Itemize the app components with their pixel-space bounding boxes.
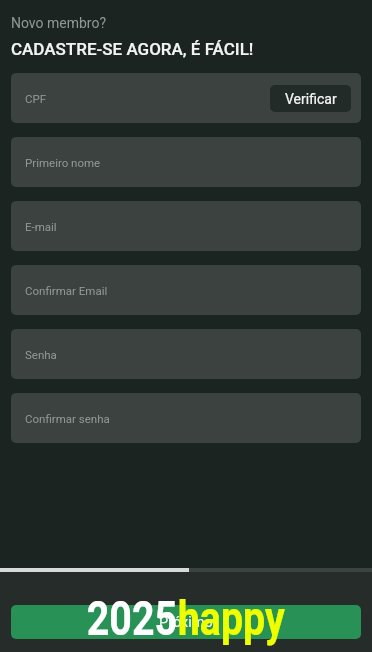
- staticText: Verificar: [285, 91, 337, 107]
- staticText: happy: [178, 590, 285, 646]
- button[interactable]: Próximo: [11, 605, 361, 639]
- staticText: 2025: [87, 590, 178, 646]
- staticText: Próximo: [159, 614, 213, 631]
- staticText: Novo membro?: [11, 15, 107, 31]
- button[interactable]: Primeiro nome: [11, 137, 361, 187]
- staticText: Primeiro nome: [25, 156, 101, 169]
- button[interactable]: Verificar: [270, 85, 351, 112]
- button[interactable]: E-mail: [11, 201, 361, 251]
- staticText: Confirmar senha: [25, 412, 110, 425]
- button[interactable]: Confirmar Email: [11, 265, 361, 315]
- button[interactable]: CPF: [11, 73, 361, 123]
- staticText: CADASTRE-SE AGORA, É FÁCIL!: [11, 39, 254, 59]
- staticText: Confirmar Email: [25, 284, 108, 297]
- staticText: Senha: [25, 348, 57, 361]
- staticText: CPF: [25, 92, 47, 105]
- staticText: E-mail: [25, 220, 57, 233]
- button[interactable]: Senha: [11, 329, 361, 379]
- button[interactable]: Confirmar senha: [11, 393, 361, 443]
